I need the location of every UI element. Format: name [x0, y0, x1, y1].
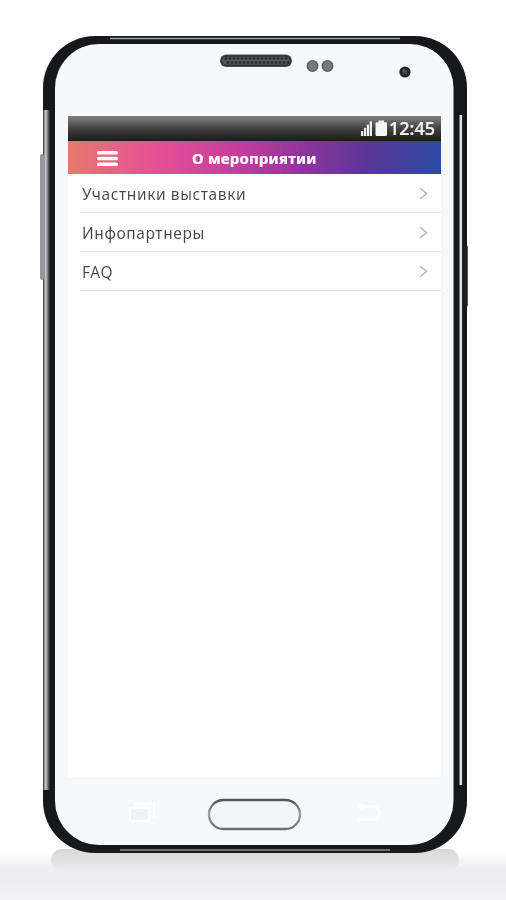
- button[interactable]: [209, 800, 300, 829]
- button[interactable]: [123, 797, 161, 828]
- button[interactable]: FAQ: [68, 252, 441, 290]
- button[interactable]: Инфопартнеры: [68, 213, 441, 251]
- button[interactable]: [92, 145, 122, 171]
- staticText: Инфопартнеры: [82, 222, 205, 243]
- button[interactable]: Участники выставки: [68, 174, 441, 212]
- staticText: 12:45: [389, 116, 436, 141]
- staticText: FAQ: [82, 261, 114, 282]
- staticText: Участники выставки: [82, 183, 247, 204]
- staticText: О мероприятии: [192, 148, 317, 168]
